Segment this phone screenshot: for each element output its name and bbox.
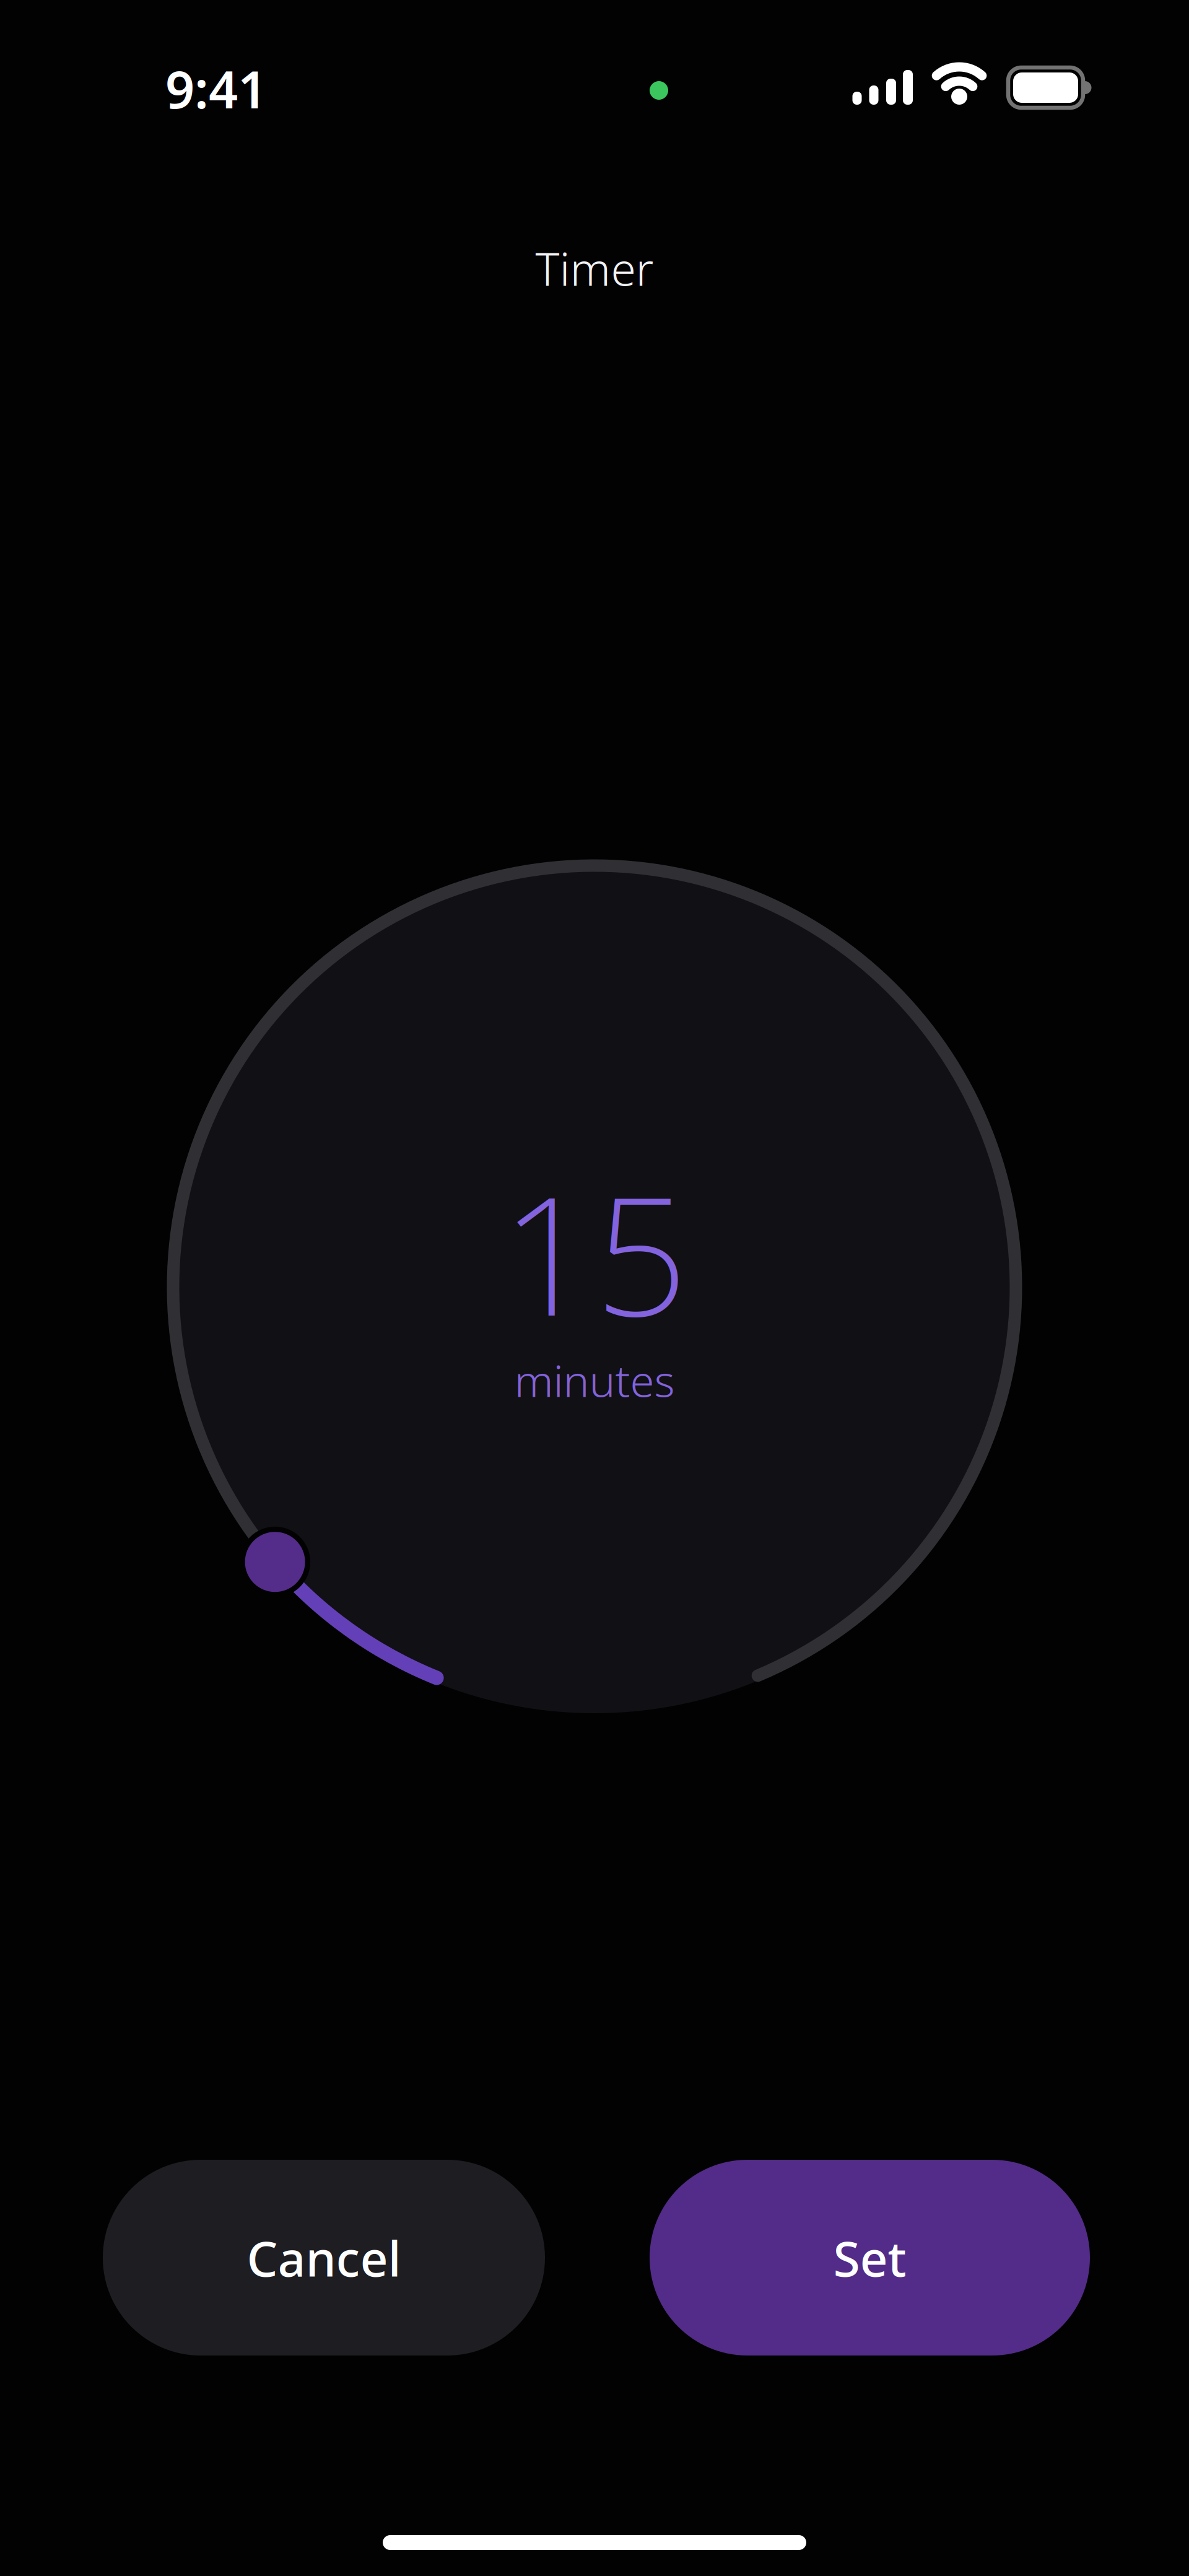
staticText: Cancel: [247, 2225, 401, 2290]
staticText: 15: [501, 1143, 688, 1361]
button[interactable]: Set: [650, 2160, 1090, 2356]
button[interactable]: Cancel: [103, 2160, 545, 2356]
staticText: Set: [833, 2225, 906, 2290]
staticText: minutes: [514, 1351, 675, 1409]
staticText: 9:41: [165, 55, 267, 123]
staticText: Timer: [535, 238, 654, 298]
